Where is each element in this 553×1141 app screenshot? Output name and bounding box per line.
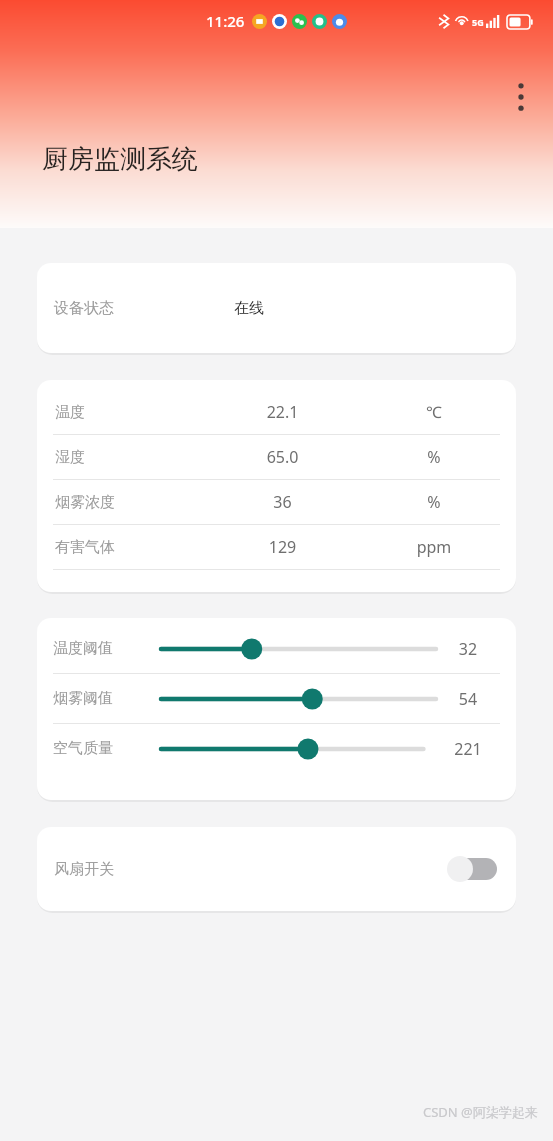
staticText: 空气质量 [53, 739, 157, 758]
staticText: 在线 [234, 299, 264, 318]
staticText: 温度 [55, 403, 195, 422]
button[interactable]: 设备状态 [37, 263, 516, 353]
button[interactable]: 空气质量 [53, 724, 500, 773]
button[interactable]: 烟雾阈值 [53, 674, 500, 723]
staticText: 温度阈值 [53, 639, 157, 658]
staticText: % [370, 446, 498, 468]
staticText: 54 [436, 688, 500, 710]
button[interactable]: 有害气体 [53, 525, 500, 570]
staticText: 烟雾浓度 [55, 493, 195, 512]
staticText: 32 [436, 638, 500, 660]
staticText: ℃ [370, 401, 498, 423]
staticText: 11:26 [206, 11, 245, 31]
staticText: 36 [195, 491, 370, 513]
staticText: 22.1 [195, 401, 370, 423]
staticText: % [370, 491, 498, 513]
staticText: 烟雾阈值 [53, 689, 157, 708]
staticText: 有害气体 [55, 538, 195, 557]
staticText: 风扇开关 [54, 860, 114, 879]
staticText: 5G [472, 16, 484, 28]
staticText: CSDN @阿柒学起来 [423, 1103, 538, 1121]
button[interactable]: 烟雾浓度 [53, 480, 500, 525]
button[interactable]: 湿度 [53, 435, 500, 480]
button[interactable]: 温度 [37, 380, 516, 592]
staticText: 厨房监测系统 [42, 143, 198, 176]
staticText: 65.0 [195, 446, 370, 468]
button[interactable]: 温度阈值 [37, 618, 516, 800]
staticText: 设备状态 [54, 299, 114, 318]
staticText: ppm [370, 536, 498, 558]
staticText: 221 [436, 738, 500, 760]
button[interactable]: 风扇开关 [37, 827, 516, 911]
staticText: 129 [195, 536, 370, 558]
button[interactable]: Fan switch, off [447, 854, 499, 884]
staticText: 湿度 [55, 448, 195, 467]
button[interactable]: 温度阈值 [53, 624, 500, 673]
button[interactable]: More options [498, 74, 544, 120]
button[interactable]: 温度 [53, 390, 500, 435]
